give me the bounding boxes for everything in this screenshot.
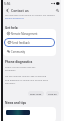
staticText: Send feedback	[12, 41, 30, 45]
staticText: Community	[11, 50, 26, 54]
button[interactable]: Service Resources	[5, 17, 24, 20]
button[interactable]: Turn on	[46, 91, 59, 96]
button[interactable]: Send feedback	[4, 38, 55, 47]
staticText: News and tips	[5, 101, 27, 105]
staticText: Phone diagnostics	[5, 60, 33, 64]
staticText: We will analyse how an app is working an…	[5, 75, 49, 84]
staticText: Get help	[5, 26, 18, 30]
button[interactable]: Back	[4, 7, 10, 13]
staticText: Turn on	[48, 92, 57, 95]
button[interactable]: Remote Management	[3, 29, 56, 38]
button[interactable]: Start scan	[28, 91, 44, 96]
staticText: Remote Management	[11, 32, 38, 36]
staticText: Contact us	[11, 8, 29, 13]
button[interactable]: Search	[54, 7, 60, 13]
button[interactable]: Community	[3, 47, 56, 56]
staticText: Get help with your phone or contact our …	[5, 14, 58, 17]
staticText: Start scan	[30, 92, 42, 95]
staticText: 5:56	[4, 2, 11, 6]
staticText: Check if your phone has any problems.	[5, 66, 36, 72]
